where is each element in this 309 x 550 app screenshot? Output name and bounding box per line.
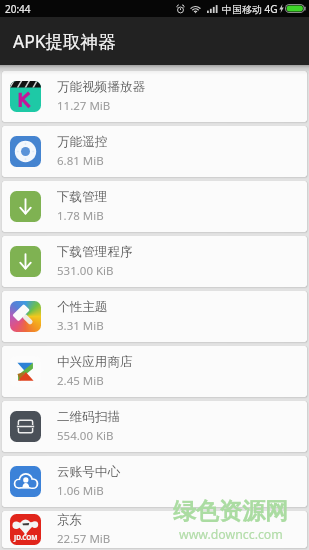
staticText: 531.00 KiB <box>57 263 114 279</box>
staticText: 3.31 MiB <box>57 318 104 334</box>
button[interactable]: 个性主题 <box>2 291 307 342</box>
staticText: 554.00 KiB <box>57 428 114 444</box>
staticText: 2.45 MiB <box>57 373 104 389</box>
staticText: 个性主题 <box>57 299 108 315</box>
staticText: 云账号中心 <box>57 464 120 480</box>
staticText: 万能遥控 <box>57 134 108 150</box>
staticText: 二维码扫描 <box>57 409 120 425</box>
button[interactable]: 二维码扫描 <box>2 401 307 452</box>
staticText: 万能视频播放器 <box>57 79 146 95</box>
staticText: JD.COM <box>14 533 38 542</box>
button[interactable]: 万能遥控 <box>2 126 307 177</box>
button[interactable]: JD.COM <box>2 511 307 548</box>
button[interactable]: 万能视频播放器 <box>2 71 307 122</box>
staticText: 6.81 MiB <box>57 153 104 169</box>
staticText: www.downcc.com <box>179 526 283 543</box>
staticText: 中国移动 4G <box>222 2 278 16</box>
staticText: 1.78 MiB <box>57 208 104 224</box>
button[interactable]: 下载管理 <box>2 181 307 232</box>
staticText: 绿色资源网 <box>173 497 288 526</box>
staticText: 下载管理 <box>57 189 108 205</box>
staticText: 京东 <box>57 512 83 528</box>
button[interactable]: 中兴应用商店 <box>2 346 307 397</box>
button[interactable]: 云账号中心 <box>2 456 307 507</box>
staticText: 20:44 <box>5 2 31 16</box>
staticText: 中兴应用商店 <box>57 354 133 370</box>
staticText: 22.57 MiB <box>57 531 111 547</box>
staticText: 1.06 MiB <box>57 483 104 499</box>
staticText: 下载管理程序 <box>57 244 133 260</box>
staticText: APK提取神器 <box>13 29 116 53</box>
button[interactable]: 下载管理程序 <box>2 236 307 287</box>
staticText: 11.27 MiB <box>57 98 111 114</box>
